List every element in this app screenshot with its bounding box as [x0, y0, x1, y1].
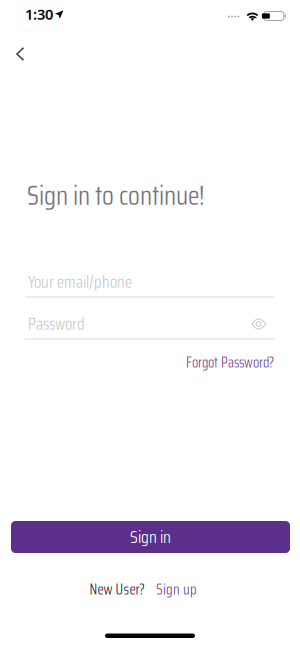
button[interactable]: Show password	[252, 319, 275, 328]
staticText: Forgot Password?	[186, 351, 274, 374]
button[interactable]: Forgot Password?	[186, 351, 274, 374]
staticText: 1:30	[25, 4, 53, 24]
staticText: New User?	[89, 578, 144, 601]
staticText: Sign up	[156, 578, 197, 601]
staticText: Sign in to continue!	[27, 174, 204, 216]
button[interactable]: Sign up	[156, 578, 197, 601]
staticText: Your email/phone	[28, 269, 132, 295]
button[interactable]: Sign in	[11, 521, 290, 553]
staticText: Sign in	[130, 523, 171, 551]
button[interactable]: Back	[0, 48, 33, 60]
staticText: Password	[28, 311, 85, 337]
